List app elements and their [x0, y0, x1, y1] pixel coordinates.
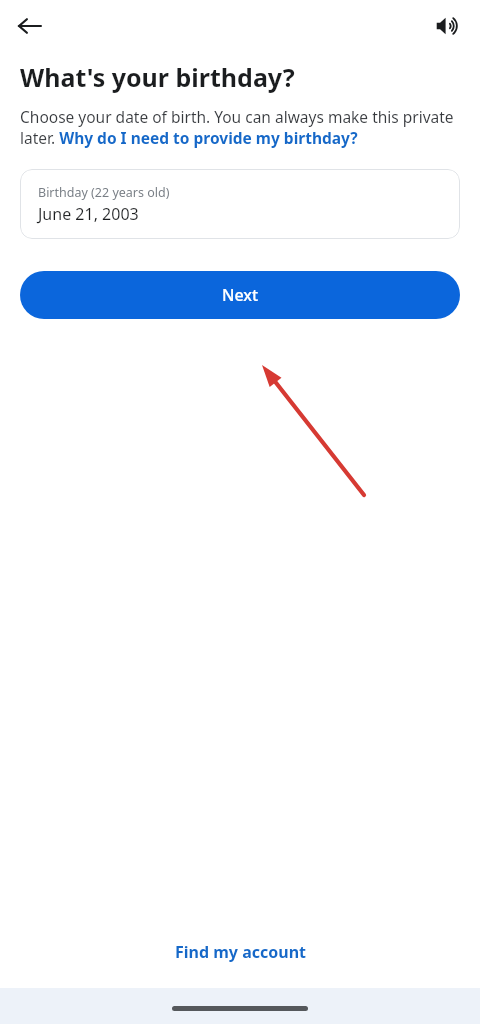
button[interactable]: Back — [8, 4, 52, 48]
button[interactable]: Birthday (22 years old) — [20, 169, 460, 239]
staticText: What's your birthday? — [20, 60, 295, 94]
button[interactable]: Find my account — [165, 937, 316, 967]
button[interactable]: Choose your date of birth. You can alway… — [20, 106, 458, 149]
staticText: Find my account — [175, 941, 306, 963]
staticText: Next — [222, 284, 259, 306]
staticText: June 21, 2003 — [38, 203, 139, 225]
staticText: Birthday (22 years old) — [38, 184, 170, 201]
button[interactable]: Sound — [426, 4, 470, 48]
button[interactable]: Next — [20, 271, 460, 319]
